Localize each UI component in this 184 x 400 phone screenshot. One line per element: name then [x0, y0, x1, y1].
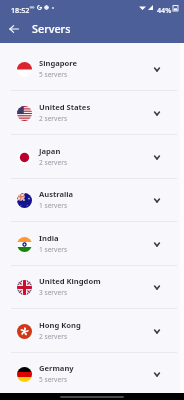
staticText: 1 servers [39, 201, 68, 210]
button[interactable]: Singapore [0, 47, 184, 91]
button[interactable]: United Kingdom [0, 265, 184, 309]
staticText: 5 servers [39, 70, 68, 79]
staticText: 3 servers [39, 288, 68, 297]
staticText: Germany [39, 363, 74, 373]
staticText: India [39, 233, 59, 243]
staticText: 2 servers [39, 158, 68, 167]
button[interactable]: Hong Kong [0, 309, 184, 353]
staticText: Singapore [39, 58, 78, 68]
staticText: Japan [39, 146, 61, 156]
button[interactable]: India [0, 222, 184, 266]
staticText: United States [39, 102, 91, 112]
button[interactable]: Australia [0, 178, 184, 222]
staticText: 5 servers [39, 375, 68, 384]
button[interactable]: Germany [0, 352, 184, 396]
staticText: Servers [32, 21, 71, 36]
button[interactable]: Japan [0, 135, 184, 179]
staticText: 1 servers [39, 245, 68, 254]
staticText: Hong Kong [39, 320, 81, 330]
staticText: United Kingdom [39, 276, 101, 286]
button[interactable]: Back [0, 14, 28, 43]
staticText: 2 servers [39, 332, 68, 341]
staticText: 2 servers [39, 114, 68, 123]
staticText: 44% [157, 5, 172, 15]
staticText: Australia [39, 189, 74, 199]
button[interactable]: United States [0, 91, 184, 135]
staticText: 18:52 [11, 5, 30, 15]
